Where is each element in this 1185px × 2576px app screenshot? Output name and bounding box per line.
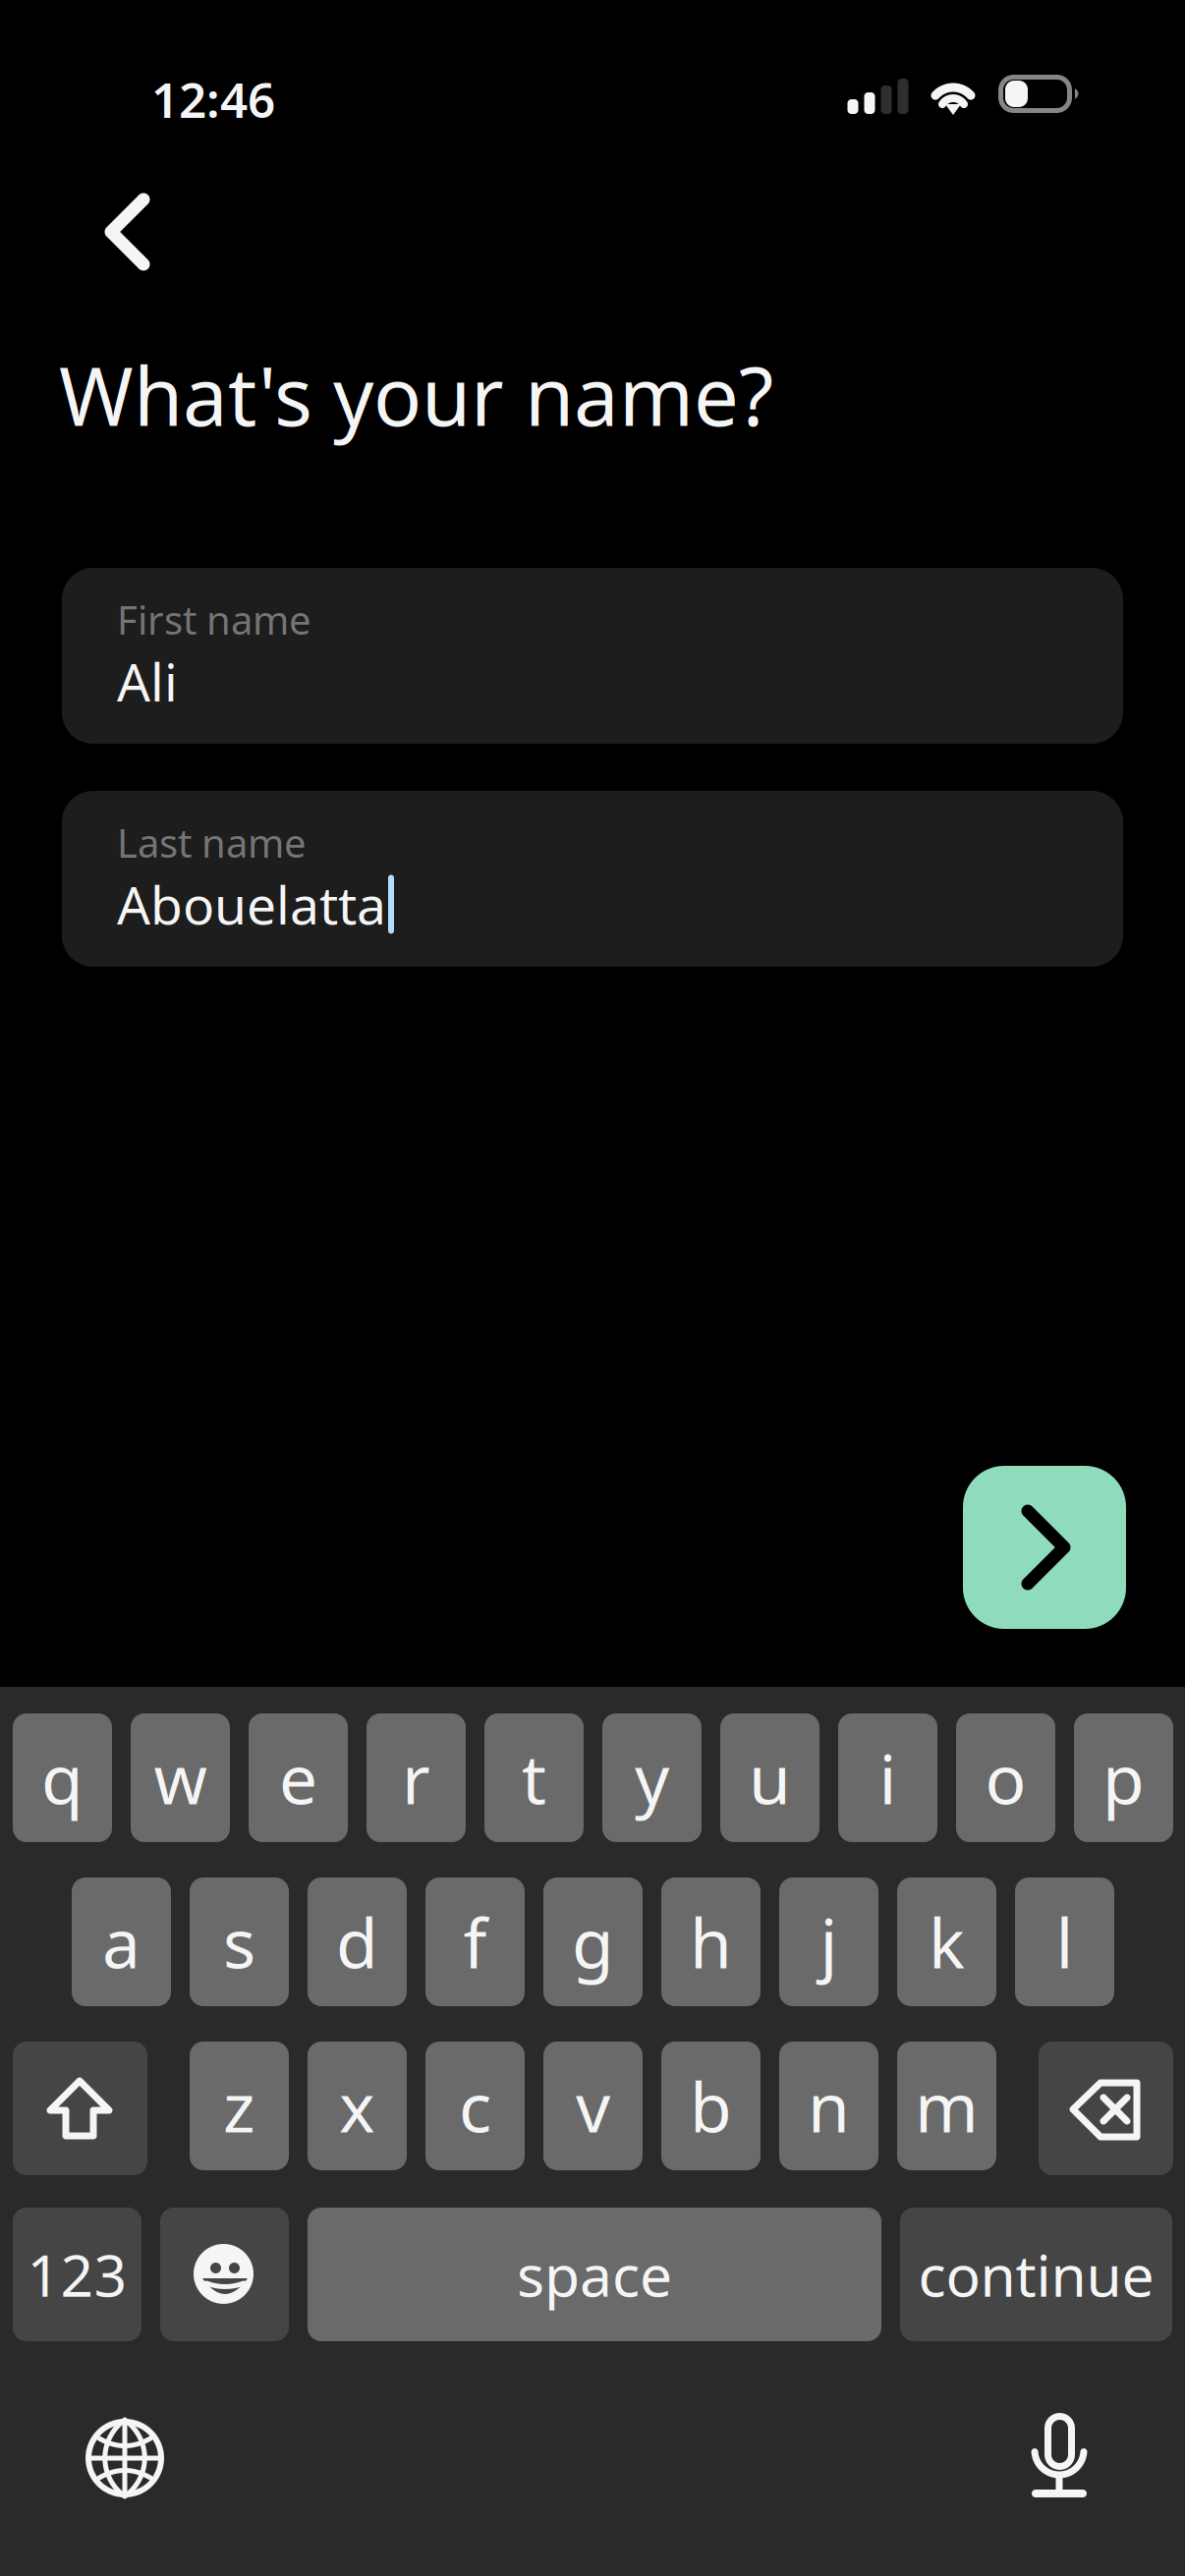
button[interactable]: o (956, 1713, 1055, 1842)
button[interactable]: Next keyboard (85, 2418, 164, 2498)
button[interactable]: w (131, 1713, 230, 1842)
button[interactable]: m (897, 2042, 996, 2170)
staticText: y (635, 1733, 669, 1823)
button[interactable]: d (308, 1877, 407, 2006)
staticText: space (517, 2236, 672, 2313)
staticText: First name (117, 593, 311, 646)
button[interactable]: k (897, 1877, 996, 2006)
button[interactable]: 123 (13, 2208, 141, 2341)
staticText: m (915, 2061, 979, 2151)
button[interactable]: j (779, 1877, 878, 2006)
button[interactable]: r (367, 1713, 466, 1842)
button[interactable]: v (543, 2042, 643, 2170)
button[interactable]: u (720, 1713, 819, 1842)
button[interactable]: z (190, 2042, 289, 2170)
button[interactable]: i (838, 1713, 937, 1842)
staticText: q (41, 1733, 84, 1823)
button[interactable]: q (13, 1713, 112, 1842)
staticText: continue (918, 2236, 1154, 2313)
button[interactable]: continue (900, 2208, 1172, 2341)
button[interactable]: t (484, 1713, 584, 1842)
button[interactable]: s (190, 1877, 289, 2006)
button[interactable]: Dictate (1031, 2413, 1088, 2497)
staticText: k (929, 1897, 965, 1987)
staticText: p (1102, 1733, 1145, 1823)
staticText: x (339, 2061, 375, 2151)
staticText: Last name (117, 816, 307, 869)
staticText: c (459, 2061, 491, 2151)
staticText: What's your name? (59, 342, 773, 448)
staticText: Abouelatta (117, 869, 386, 939)
staticText: t (522, 1733, 546, 1823)
button[interactable]: n (779, 2042, 878, 2170)
button[interactable]: Back (67, 167, 220, 297)
button[interactable]: c (425, 2042, 525, 2170)
staticText: g (572, 1897, 614, 1987)
staticText: l (1056, 1897, 1073, 1987)
button[interactable]: space (308, 2208, 881, 2341)
staticText: 12:46 (151, 67, 275, 131)
staticText: b (690, 2061, 732, 2151)
button[interactable]: b (661, 2042, 761, 2170)
button[interactable]: f (425, 1877, 525, 2006)
staticText: w (154, 1733, 207, 1823)
button[interactable]: e (249, 1713, 348, 1842)
staticText: Ali (117, 646, 178, 716)
staticText: n (808, 2061, 850, 2151)
staticText: 123 (27, 2236, 127, 2313)
button[interactable]: y (602, 1713, 702, 1842)
staticText: f (463, 1897, 487, 1987)
staticText: z (223, 2061, 255, 2151)
staticText: d (336, 1897, 378, 1987)
staticText: v (576, 2061, 610, 2151)
button[interactable]: x (308, 2042, 407, 2170)
staticText: u (749, 1733, 791, 1823)
button[interactable]: Continue (963, 1466, 1126, 1629)
staticText: r (402, 1733, 430, 1823)
button[interactable]: Shift (13, 2042, 147, 2175)
button[interactable]: l (1015, 1877, 1114, 2006)
button[interactable]: a (72, 1877, 171, 2006)
staticText: o (985, 1733, 1026, 1823)
button[interactable]: Emoji (160, 2208, 289, 2341)
staticText: h (690, 1897, 732, 1987)
staticText: j (820, 1897, 838, 1987)
staticText: a (102, 1897, 141, 1987)
button[interactable]: h (661, 1877, 761, 2006)
button[interactable]: p (1074, 1713, 1173, 1842)
staticText: s (223, 1897, 255, 1987)
button[interactable]: g (543, 1877, 643, 2006)
staticText: e (279, 1733, 317, 1823)
staticText: i (879, 1733, 897, 1823)
button[interactable]: Delete (1039, 2042, 1173, 2175)
